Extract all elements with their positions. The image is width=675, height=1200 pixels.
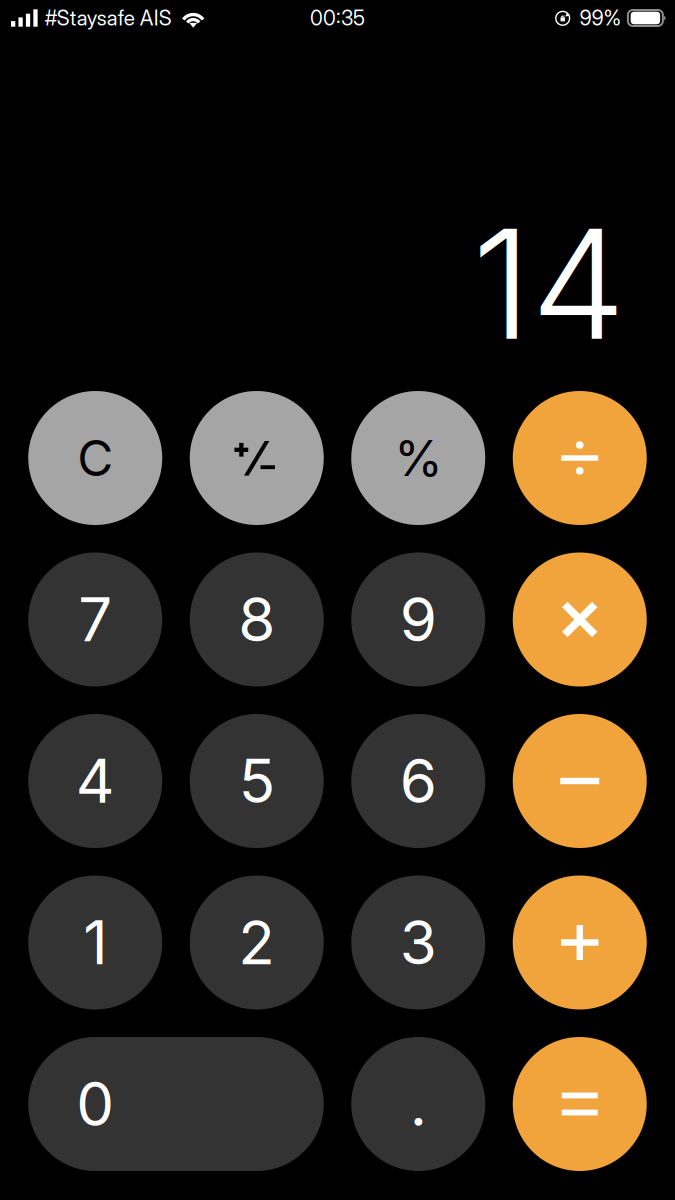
- button[interactable]: Divide: [513, 391, 647, 525]
- staticText: 4: [76, 745, 115, 817]
- button[interactable]: 4: [28, 714, 162, 848]
- button[interactable]: 8: [190, 552, 324, 686]
- staticText: 2: [238, 906, 275, 979]
- button[interactable]: Plus minus: [190, 391, 324, 525]
- button[interactable]: Multiply: [513, 552, 647, 686]
- button[interactable]: Minus: [513, 714, 647, 848]
- button[interactable]: C: [28, 391, 162, 525]
- staticText: 0: [76, 1068, 114, 1140]
- staticText: 3: [400, 906, 437, 979]
- staticText: 99%: [579, 5, 621, 31]
- button[interactable]: Equals: [513, 1037, 647, 1171]
- staticText: 9: [400, 583, 437, 656]
- staticText: 14: [472, 193, 626, 375]
- button[interactable]: 9: [351, 552, 485, 686]
- button[interactable]: 1: [28, 875, 162, 1009]
- staticText: 8: [238, 583, 275, 656]
- button[interactable]: 3: [351, 875, 485, 1009]
- button[interactable]: 2: [190, 875, 324, 1009]
- button[interactable]: Plus: [513, 875, 647, 1009]
- staticText: 6: [400, 745, 437, 817]
- button[interactable]: 0: [28, 1037, 324, 1171]
- button[interactable]: 5: [190, 714, 324, 848]
- button[interactable]: 6: [351, 714, 485, 848]
- staticText: 5: [239, 745, 275, 817]
- staticText: #Staysafe AIS: [45, 5, 172, 31]
- staticText: 1: [83, 906, 107, 979]
- staticText: C: [77, 428, 113, 488]
- staticText: .: [410, 1068, 427, 1140]
- button[interactable]: 7: [28, 552, 162, 686]
- button[interactable]: %: [351, 391, 485, 525]
- staticText: %: [394, 428, 442, 488]
- staticText: 00:35: [310, 5, 365, 31]
- staticText: 7: [78, 583, 112, 656]
- button[interactable]: .: [351, 1037, 485, 1171]
